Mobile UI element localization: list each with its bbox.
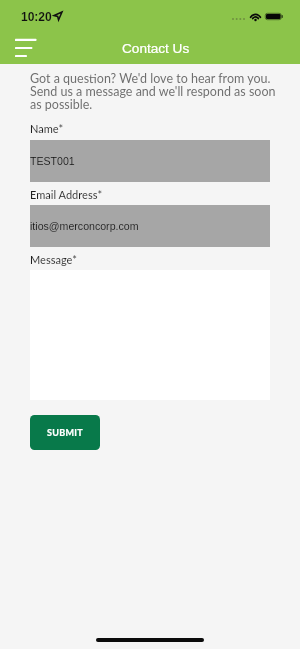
staticText: SUBMIT [47, 427, 83, 438]
button[interactable]: Open navigation menu [7, 31, 41, 63]
staticText: Message* [30, 253, 77, 266]
button[interactable]: TEST001 [30, 140, 270, 182]
button[interactable]: itios@merconcorp.com [30, 205, 270, 247]
staticText: Email Address* [30, 188, 103, 201]
staticText: Got a question? We'd love to hear from y… [30, 71, 276, 112]
button[interactable]: SUBMIT [30, 415, 100, 450]
staticText: itios@merconcorp.com [30, 220, 139, 232]
staticText: Name* [30, 122, 64, 135]
staticText: TEST001 [30, 155, 75, 167]
staticText: 10:20 [21, 10, 52, 23]
staticText: Contact Us [122, 41, 190, 56]
